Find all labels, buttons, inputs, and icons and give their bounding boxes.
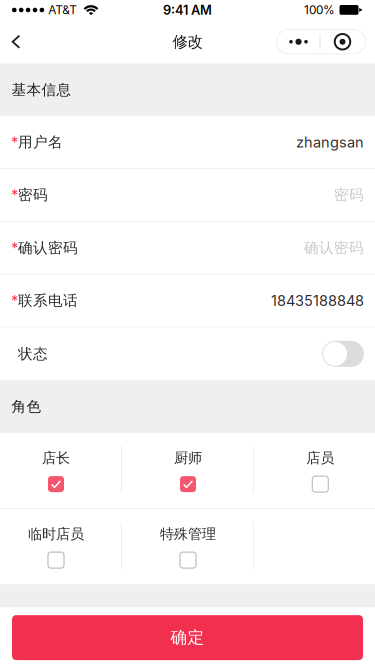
staticText: 特殊管理 [160,525,216,543]
button[interactable]: * [0,116,375,169]
button[interactable]: 厨师 [122,433,253,508]
button[interactable]: * [0,275,375,327]
button[interactable]: 临时店员 [0,509,121,584]
staticText: 密码 [334,186,364,204]
staticText: 用户名 [18,133,63,151]
staticText: 密码 [18,186,48,204]
staticText: 店员 [306,449,334,467]
button[interactable]: 店员 [254,433,375,508]
button[interactable]: 特殊管理 [122,509,253,584]
staticText: 修改 [172,32,202,51]
staticText: * [11,292,18,309]
staticText: * [11,133,18,151]
button[interactable]: * [0,222,375,275]
staticText: 店长 [42,449,70,467]
staticText: 确认密码 [304,239,364,257]
staticText: 9:41 AM [163,2,212,18]
button[interactable]: More options [272,20,370,63]
button[interactable]: 状态 [308,327,375,380]
staticText: 状态 [18,345,48,363]
staticText: 临时店员 [28,525,84,543]
button[interactable]: Back [0,20,32,63]
staticText: * [11,186,18,204]
staticText: 基本信息 [11,81,71,99]
staticText: * [11,239,18,257]
staticText: zhangsan [296,133,364,151]
button[interactable]: 确定 [12,615,363,660]
staticText: 100% [304,3,335,17]
staticText: 18435188848 [271,292,364,309]
staticText: 厨师 [174,449,202,467]
staticText: AT&T [48,3,77,17]
staticText: 确认密码 [18,239,78,257]
button[interactable]: 店长 [0,433,121,508]
staticText: 角色 [11,397,41,416]
button[interactable]: * [0,169,375,222]
staticText: 确定 [170,627,204,648]
staticText: 联系电话 [18,291,78,310]
